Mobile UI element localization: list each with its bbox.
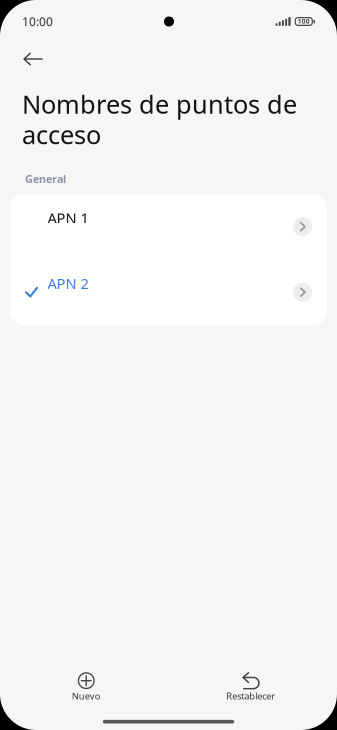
button[interactable]: APN 2 [10, 259, 327, 325]
staticText: Nombres de puntos de [22, 87, 297, 121]
button[interactable]: APN 1 [10, 194, 327, 259]
button[interactable]: Nuevo [4, 670, 168, 701]
staticText: APN 2 [47, 273, 88, 293]
staticText: 10:00 [22, 13, 53, 29]
button[interactable]: Back [12, 44, 54, 74]
staticText: Nuevo [72, 690, 101, 702]
staticText: acceso [22, 118, 101, 151]
staticText: 100 [298, 17, 310, 26]
staticText: APN 1 [47, 208, 88, 227]
button[interactable]: Restablecer [168, 670, 333, 701]
staticText: General [25, 172, 66, 186]
staticText: Restablecer [226, 690, 275, 702]
